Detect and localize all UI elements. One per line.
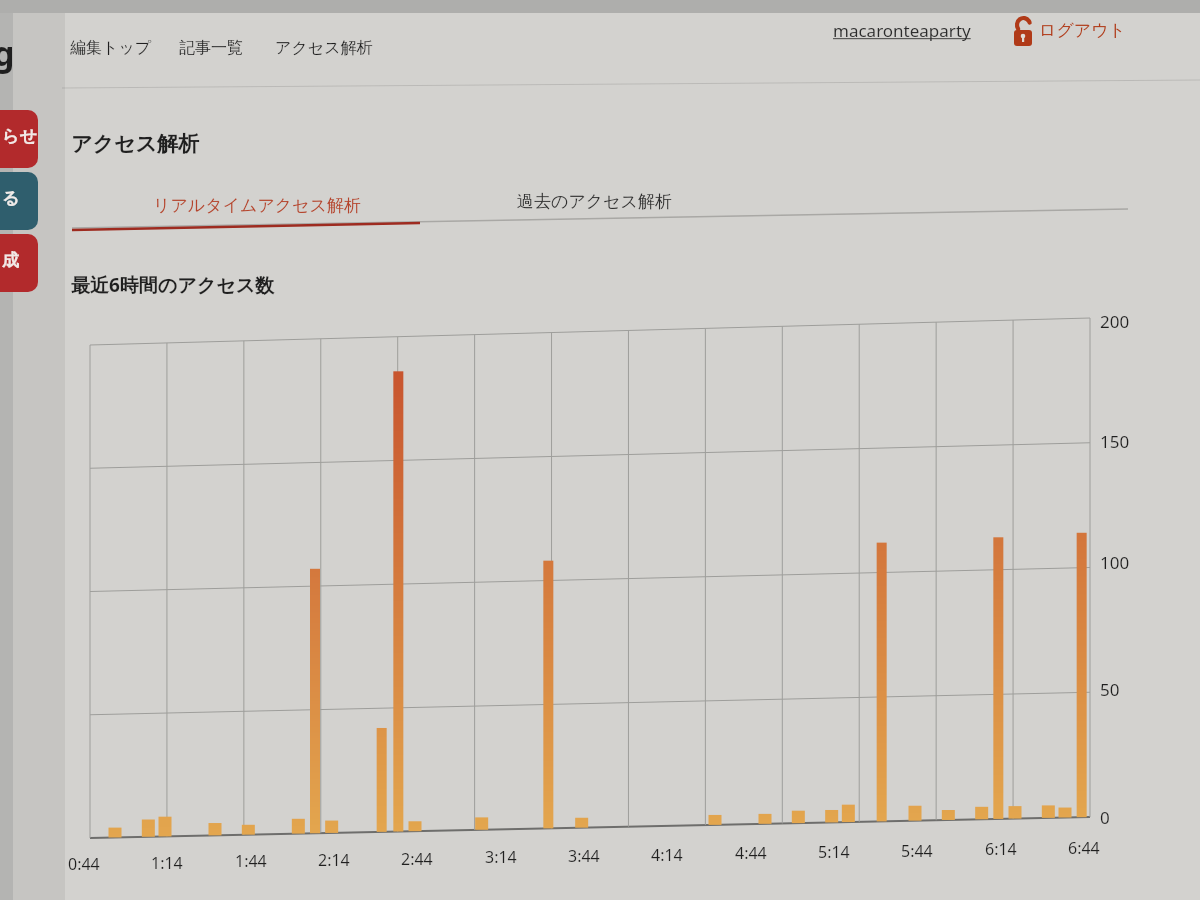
staticText: ログアウト bbox=[1039, 20, 1126, 41]
button[interactable]: アクセス解析 bbox=[269, 32, 373, 64]
button[interactable]: 見る bbox=[0, 172, 38, 230]
staticText: 6:14 bbox=[985, 838, 1017, 860]
staticText: 200 bbox=[1100, 310, 1130, 333]
staticText: リアルタイムアクセス解析 bbox=[153, 195, 361, 216]
staticText: 5:44 bbox=[901, 840, 933, 862]
staticText: 150 bbox=[1100, 430, 1130, 453]
staticText: らせ bbox=[2, 126, 37, 147]
staticText: 2:44 bbox=[401, 848, 433, 870]
button[interactable]: お知らせ bbox=[0, 110, 38, 168]
button[interactable]: macaronteaparty bbox=[833, 19, 971, 42]
staticText: アクセス解析 bbox=[275, 38, 373, 58]
staticText: 最近6時間のアクセス数 bbox=[71, 272, 275, 298]
staticText: 過去のアクセス解析 bbox=[517, 191, 672, 212]
staticText: 4:14 bbox=[651, 844, 683, 866]
staticText: 編集トップ bbox=[70, 38, 152, 58]
staticText: 0:44 bbox=[68, 853, 100, 875]
button[interactable]: 記事一覧 bbox=[173, 32, 261, 64]
staticText: 6:44 bbox=[1068, 837, 1100, 859]
staticText: 100 bbox=[1100, 551, 1130, 574]
staticText: 50 bbox=[1100, 678, 1120, 701]
staticText: g bbox=[0, 30, 15, 76]
staticText: 5:14 bbox=[818, 841, 850, 863]
button[interactable]: 編集トップ bbox=[64, 32, 168, 64]
staticText: 1:14 bbox=[151, 852, 183, 874]
staticText: 成 bbox=[2, 250, 19, 271]
staticText: macaronteaparty bbox=[833, 19, 971, 42]
button[interactable]: ログアウト bbox=[1008, 12, 1120, 50]
staticText: アクセス解析 bbox=[71, 131, 199, 157]
staticText: 1:44 bbox=[235, 850, 267, 872]
button[interactable]: 作成 bbox=[0, 234, 38, 292]
staticText: 3:44 bbox=[568, 845, 600, 867]
staticText: 4:44 bbox=[735, 842, 767, 864]
staticText: 0 bbox=[1100, 806, 1110, 829]
staticText: 3:14 bbox=[485, 846, 517, 868]
staticText: 2:14 bbox=[318, 849, 350, 871]
button[interactable]: リアルタイムアクセス解析 bbox=[120, 185, 420, 227]
staticText: る bbox=[2, 188, 20, 209]
button[interactable]: 過去のアクセス解析 bbox=[490, 183, 720, 225]
staticText: 記事一覧 bbox=[179, 38, 243, 58]
